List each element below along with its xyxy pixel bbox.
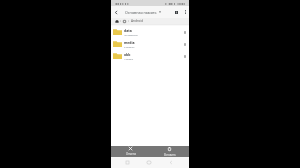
staticText: data — [124, 28, 132, 33]
button[interactable]: Paste — [150, 146, 189, 157]
button[interactable]: Back — [111, 6, 121, 18]
button[interactable]: Home — [146, 157, 152, 168]
button[interactable]: Item options — [182, 39, 187, 50]
button[interactable]: Switch view — [171, 6, 181, 18]
button[interactable]: obb — [111, 50, 189, 62]
staticText: 159 элементов — [124, 34, 138, 37]
button[interactable]: media — [111, 38, 189, 50]
button[interactable]: Internal storage — [121, 18, 128, 24]
button[interactable]: Recent apps — [124, 157, 130, 168]
staticText: Основная память — [125, 10, 157, 15]
staticText: Отмена — [126, 152, 136, 156]
button[interactable]: Android — [131, 19, 143, 23]
staticText: › — [120, 19, 121, 23]
button[interactable]: Cancel — [111, 146, 150, 157]
staticText: 3 элемента — [124, 46, 135, 49]
button[interactable]: Item options — [182, 51, 187, 62]
button[interactable]: More options — [181, 6, 189, 18]
staticText: obb — [124, 52, 131, 57]
staticText: Вставить — [164, 153, 176, 157]
button[interactable]: Home — [113, 18, 120, 24]
staticText: › — [128, 19, 129, 23]
staticText: 1 элемент — [124, 58, 134, 61]
button[interactable]: Back — [168, 157, 174, 168]
button[interactable]: Item options — [182, 27, 187, 38]
staticText: media — [124, 40, 135, 45]
button[interactable]: data — [111, 26, 189, 38]
